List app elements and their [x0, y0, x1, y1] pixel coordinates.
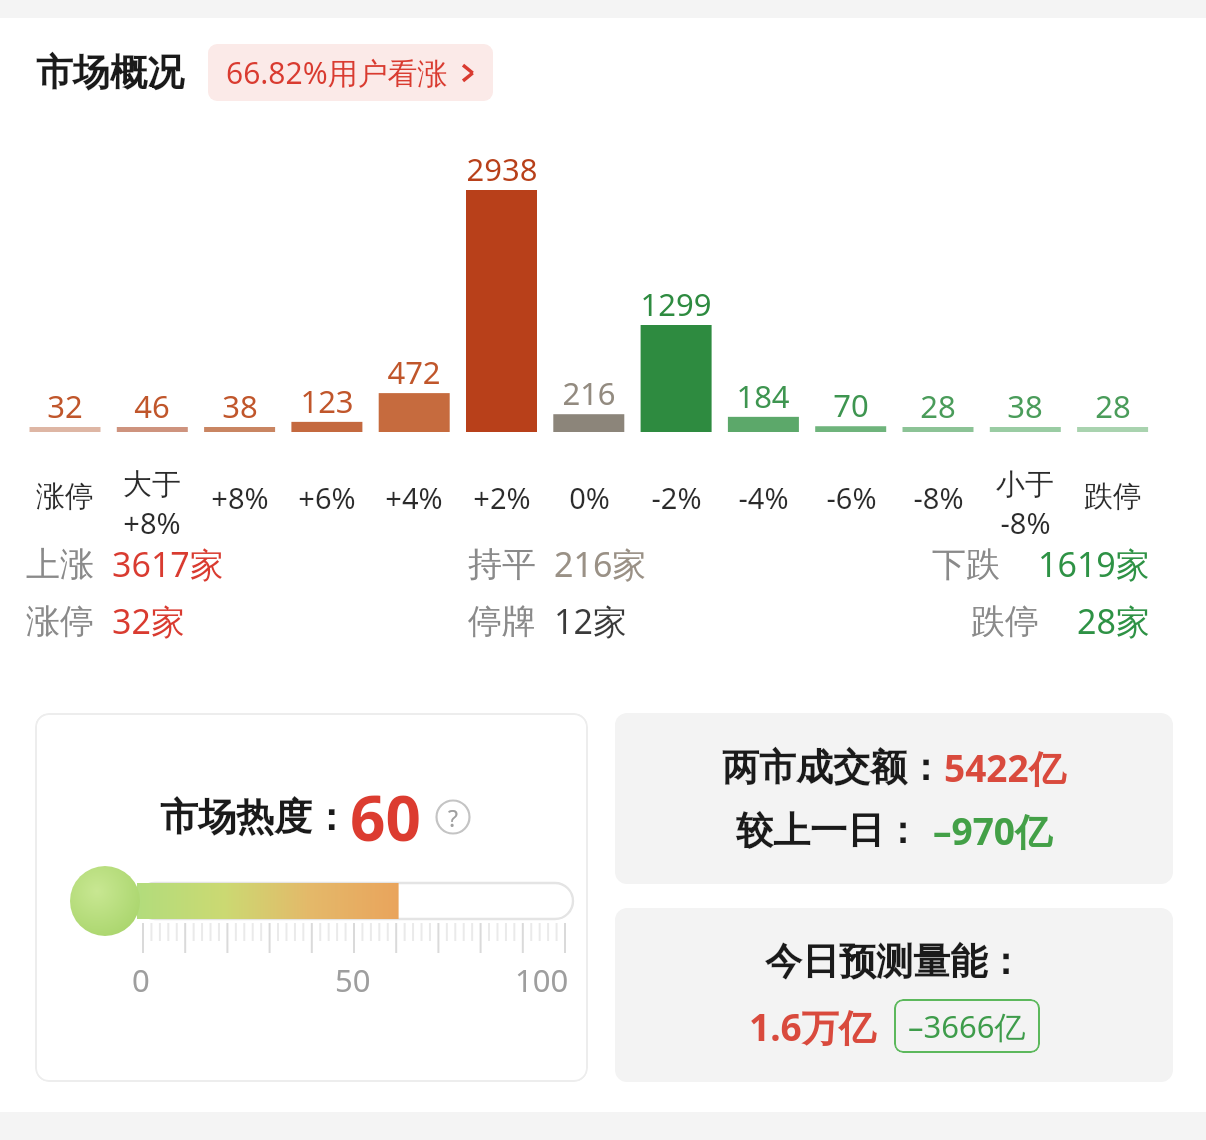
staticText: 100	[515, 959, 569, 1001]
staticText: 今日预测量能：	[765, 938, 1024, 985]
staticText: 涨停	[26, 600, 94, 643]
staticText: -8%	[913, 478, 964, 517]
staticText: 123	[267, 380, 387, 422]
staticText: 28	[878, 385, 998, 427]
staticText: -6%	[826, 478, 877, 517]
staticText: –3666亿	[908, 1005, 1026, 1047]
staticText: 28	[1053, 385, 1173, 427]
staticText: –970亿	[933, 805, 1052, 856]
staticText: 38	[180, 385, 300, 427]
staticText: 32家	[112, 598, 185, 644]
staticText: -2%	[651, 478, 702, 517]
staticText: 0%	[569, 478, 610, 517]
staticText: 下跌	[932, 543, 1000, 586]
staticText: 46	[92, 385, 212, 427]
button[interactable]: 66.82%用户看涨	[208, 44, 493, 101]
staticText: +8%	[123, 503, 181, 542]
staticText: 小于	[996, 466, 1054, 503]
staticText: 28家	[1077, 598, 1150, 644]
staticText: 停牌	[468, 600, 536, 643]
staticText: 市场热度：	[160, 793, 350, 841]
staticText: 50	[335, 959, 371, 1001]
staticText: +8%	[211, 478, 269, 517]
staticText: 上涨	[26, 543, 94, 586]
staticText: 60	[350, 775, 421, 859]
staticText: 两市成交额：	[722, 744, 944, 791]
staticText: 跌停	[971, 600, 1039, 643]
button[interactable]: 市场热度：	[35, 713, 588, 1082]
staticText: 472	[354, 351, 474, 393]
staticText: 38	[965, 385, 1085, 427]
staticText: 12家	[554, 598, 627, 644]
staticText: ?	[448, 802, 458, 833]
staticText: 0	[132, 959, 150, 1001]
staticText: -8%	[1000, 503, 1051, 542]
staticText: +2%	[473, 478, 531, 517]
staticText: 66.82%用户看涨	[226, 52, 448, 93]
staticText: 5422亿	[944, 742, 1066, 793]
staticText: 涨停	[36, 478, 94, 515]
staticText: 1619家	[1038, 541, 1150, 587]
staticText: 216家	[554, 541, 647, 587]
staticText: 70	[791, 384, 911, 426]
staticText: 1299	[616, 283, 736, 325]
staticText: 3617家	[112, 541, 224, 587]
staticText: 1.6万亿	[749, 1001, 876, 1052]
button[interactable]: 市场热度说明	[435, 799, 471, 835]
staticText: 较上一日：	[736, 807, 921, 854]
button[interactable]: 两市成交额：	[615, 713, 1173, 884]
staticText: 大于	[123, 466, 181, 503]
staticText: +4%	[385, 478, 443, 517]
staticText: 市场概况	[36, 49, 184, 96]
button[interactable]: 今日预测量能：	[615, 908, 1173, 1082]
staticText: 持平	[468, 543, 536, 586]
staticText: 跌停	[1084, 478, 1142, 515]
staticText: 184	[703, 375, 823, 417]
staticText: +6%	[298, 478, 356, 517]
staticText: 216	[529, 372, 649, 414]
staticText: 2938	[442, 148, 562, 190]
staticText: -4%	[738, 478, 789, 517]
staticText: 32	[5, 385, 125, 427]
